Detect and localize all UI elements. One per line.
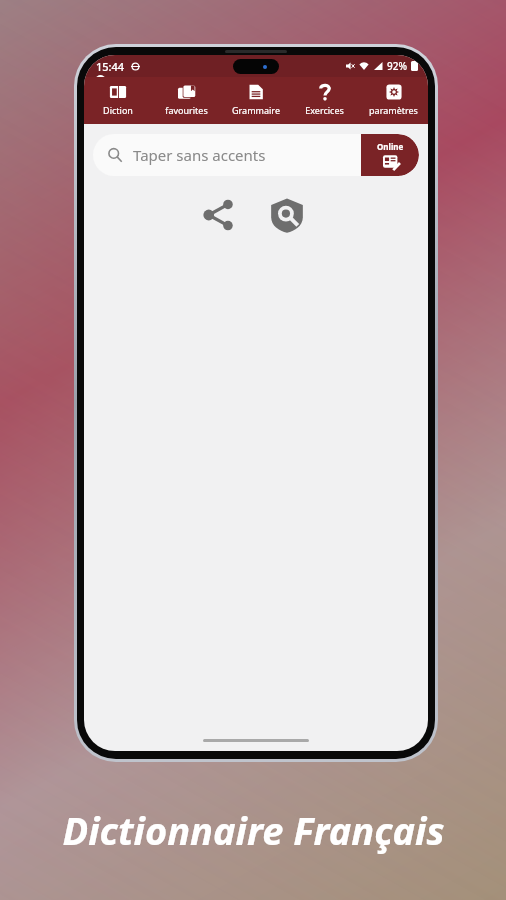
- staticText: Exercices: [305, 104, 344, 116]
- staticText: 92%: [387, 59, 407, 73]
- staticText: 15:44: [96, 59, 125, 74]
- staticText: paramètres: [369, 104, 418, 116]
- button[interactable]: Grammaire: [221, 81, 290, 118]
- button[interactable]: Share: [196, 192, 242, 238]
- button[interactable]: Online: [361, 134, 419, 176]
- button[interactable]: Search privacy: [264, 192, 310, 238]
- staticText: Dictionnaire Français: [62, 804, 445, 856]
- button[interactable]: favourites: [152, 81, 221, 118]
- staticText: Taper sans accents: [133, 145, 266, 165]
- staticText: favourites: [165, 104, 208, 116]
- staticText: Online: [377, 141, 404, 152]
- staticText: Diction: [103, 104, 133, 116]
- button[interactable]: Taper sans accents: [93, 134, 361, 176]
- button[interactable]: Diction: [84, 81, 152, 118]
- button[interactable]: Exercices: [290, 81, 359, 118]
- button[interactable]: paramètres: [359, 81, 428, 118]
- staticText: Grammaire: [232, 104, 280, 116]
